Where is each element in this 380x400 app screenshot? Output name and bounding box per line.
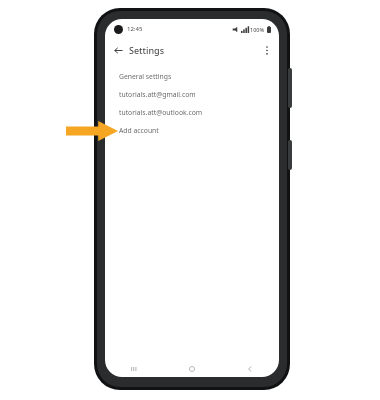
button[interactable]: Recent apps: [105, 361, 163, 377]
staticText: tutorials.att@gmail.com: [119, 90, 196, 99]
button[interactable]: Back: [110, 42, 126, 58]
staticText: General settings: [119, 72, 172, 81]
button[interactable]: General settings: [105, 67, 279, 85]
button[interactable]: More options: [259, 42, 275, 58]
staticText: Settings: [129, 44, 165, 56]
staticText: Add account: [119, 126, 159, 135]
button[interactable]: Back: [221, 361, 279, 377]
button[interactable]: tutorials.att@outlook.com: [105, 103, 279, 121]
staticText: 100%: [250, 26, 265, 33]
button[interactable]: Add account: [105, 121, 279, 139]
staticText: tutorials.att@outlook.com: [119, 108, 203, 117]
staticText: 12:45: [127, 25, 143, 33]
button[interactable]: tutorials.att@gmail.com: [105, 85, 279, 103]
button[interactable]: Home: [163, 361, 221, 377]
